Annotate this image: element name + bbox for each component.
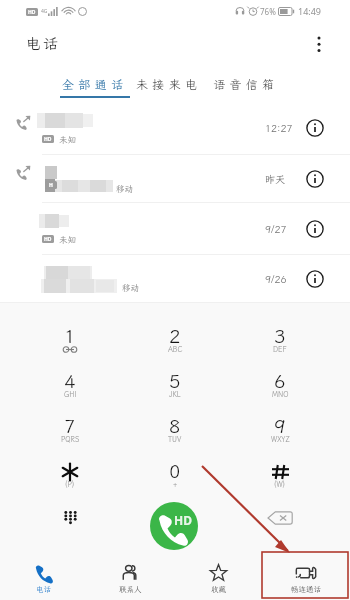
button[interactable]: 2 [145, 323, 205, 363]
staticText: 8 [169, 413, 181, 438]
button[interactable]: 5 [145, 368, 205, 408]
button[interactable]: More options [308, 33, 330, 55]
staticText: 昨天 [265, 173, 285, 186]
button[interactable]: 收藏 [174, 552, 262, 600]
staticText: 6 [274, 368, 286, 393]
button[interactable]: 移动 [0, 255, 350, 303]
button[interactable]: 8 [145, 413, 205, 453]
button[interactable]: H [0, 155, 350, 203]
staticText: TUV [168, 435, 182, 444]
staticText: 3 [274, 323, 286, 348]
staticText: 全部通话 [62, 77, 128, 93]
button[interactable]: Call [150, 502, 198, 550]
button[interactable]: 畅连通话 [262, 552, 350, 600]
button[interactable]: 电话 [0, 552, 87, 600]
button[interactable]: 0 [145, 458, 205, 498]
button[interactable]: Call details [305, 219, 325, 239]
staticText: 7 [64, 413, 76, 438]
staticText: 收藏 [211, 584, 226, 594]
staticText: DEF [273, 345, 287, 354]
staticText: 畅连通话 [291, 584, 321, 594]
staticText: 未知 [59, 134, 77, 145]
button[interactable]: Delete [264, 509, 296, 527]
staticText: PQRS [61, 435, 80, 444]
staticText: 4 [64, 368, 76, 393]
staticText: GHI [64, 390, 77, 399]
staticText: 76% [260, 6, 276, 17]
staticText: WXYZ [271, 435, 290, 444]
button[interactable]: Call details [305, 269, 325, 289]
button[interactable]: 联系人 [87, 552, 174, 600]
staticText: 5 [169, 368, 181, 393]
button[interactable]: 6 [250, 368, 310, 408]
staticText: 电话 [26, 34, 60, 54]
button[interactable]: 语音信箱 [213, 66, 279, 101]
staticText: 1 [64, 323, 76, 348]
button[interactable]: 4 [40, 368, 100, 408]
staticText: 9 [274, 413, 286, 438]
staticText: 语音信箱 [213, 77, 279, 93]
staticText: HD [44, 236, 52, 243]
button[interactable]: (P) [40, 458, 100, 498]
staticText: ABC [168, 345, 183, 354]
staticText: HD [44, 136, 52, 143]
staticText: HD [28, 9, 36, 16]
staticText: 0 [169, 458, 181, 483]
button[interactable]: HD [0, 101, 350, 155]
button[interactable]: 全部通话 [60, 66, 130, 101]
button[interactable]: 1 [40, 323, 100, 363]
staticText: 12:27 [265, 122, 293, 135]
button[interactable]: Call details [305, 169, 325, 189]
button[interactable]: 未接来电 [136, 66, 202, 101]
staticText: 电话 [36, 584, 51, 594]
staticText: 14:49 [298, 5, 322, 17]
staticText: + [173, 480, 178, 489]
staticText: 9/27 [265, 223, 287, 236]
staticText: 移动 [122, 282, 140, 293]
button[interactable]: (W) [250, 458, 310, 498]
staticText: (W) [274, 480, 286, 489]
staticText: 2 [169, 323, 181, 348]
button[interactable]: Call details [305, 118, 325, 138]
button[interactable]: HD [0, 203, 350, 255]
staticText: JKL [169, 390, 181, 399]
button[interactable]: Hide dialpad [55, 503, 85, 533]
staticText: 未接来电 [136, 77, 202, 93]
staticText: H [49, 182, 53, 189]
staticText: (P) [65, 480, 75, 489]
button[interactable]: 9 [250, 413, 310, 453]
staticText: MNO [272, 390, 289, 399]
button[interactable]: 3 [250, 323, 310, 363]
staticText: 联系人 [119, 584, 142, 594]
button[interactable]: 7 [40, 413, 100, 453]
staticText: 移动 [116, 183, 134, 194]
staticText: 9/26 [265, 273, 287, 286]
staticText: 4G [41, 8, 48, 15]
staticText: HD [174, 512, 192, 528]
staticText: 未知 [59, 234, 77, 245]
